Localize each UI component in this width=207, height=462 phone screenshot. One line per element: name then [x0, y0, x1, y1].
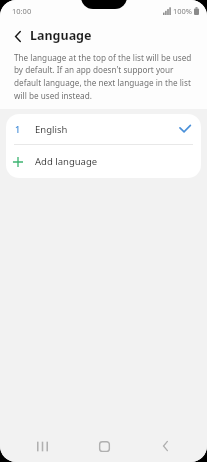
- staticText: 10:00: [12, 6, 32, 16]
- button[interactable]: Recents: [22, 431, 62, 461]
- staticText: 100%: [173, 6, 193, 16]
- staticText: Language: [30, 27, 92, 44]
- staticText: English: [35, 123, 68, 136]
- button[interactable]: Home: [84, 431, 124, 461]
- staticText: 1: [15, 123, 21, 135]
- button[interactable]: Add language: [6, 145, 201, 178]
- button[interactable]: Back: [8, 26, 28, 46]
- button[interactable]: 1: [6, 114, 201, 144]
- button[interactable]: Back: [145, 431, 185, 461]
- staticText: The language at the top of the list will…: [14, 52, 197, 101]
- staticText: Add language: [35, 155, 98, 168]
